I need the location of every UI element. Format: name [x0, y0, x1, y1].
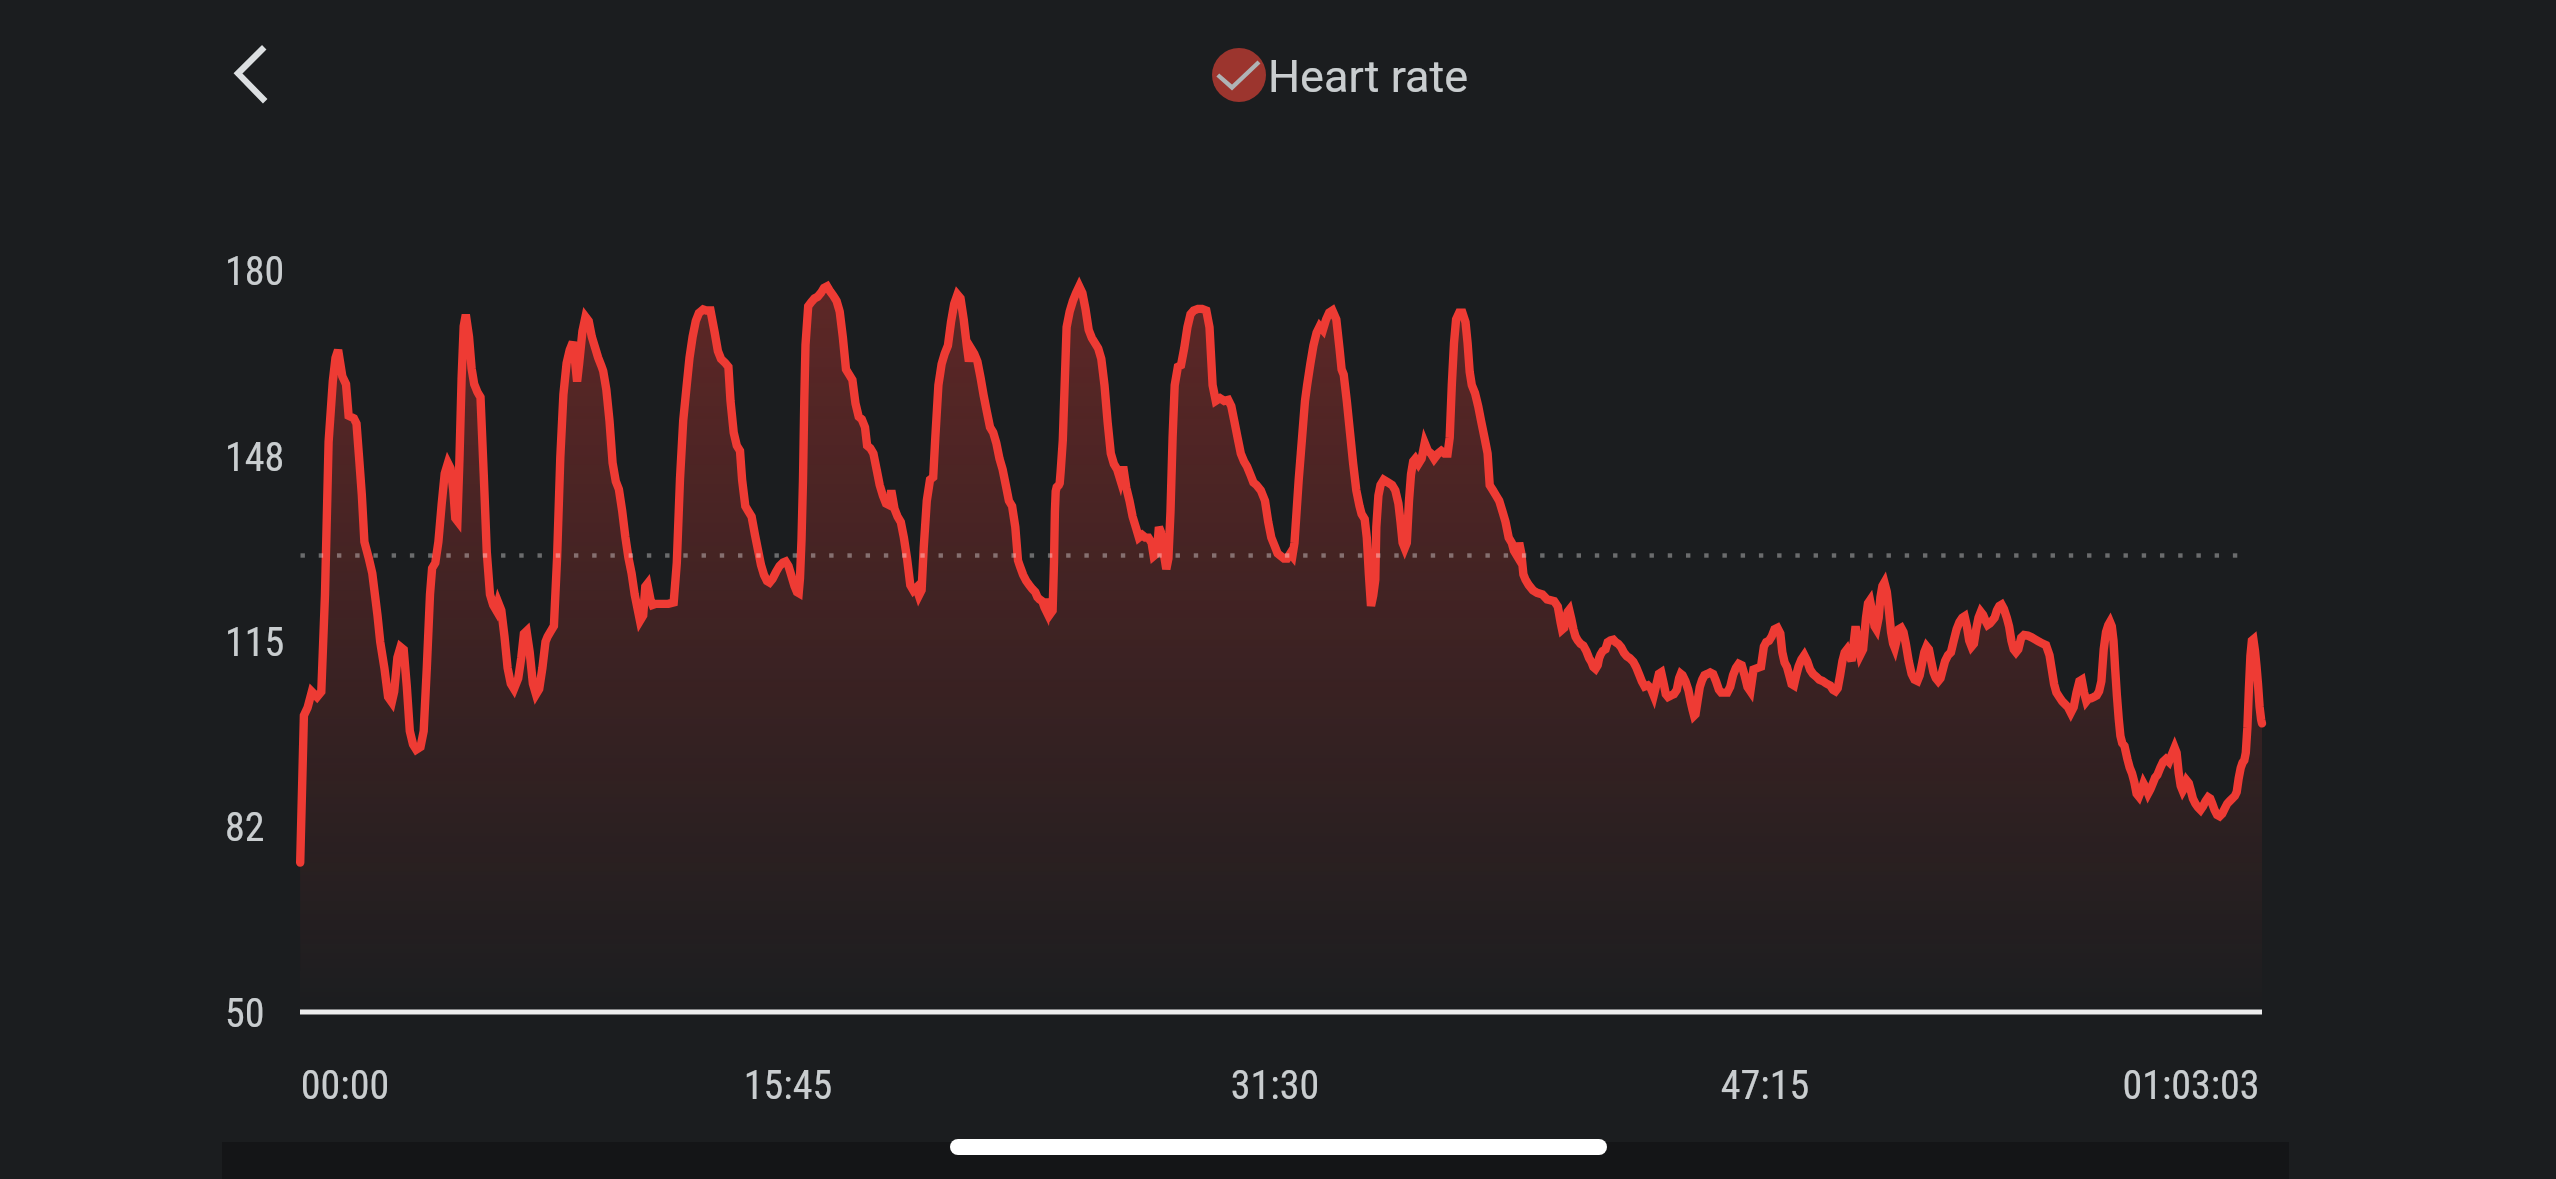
staticText: 148 — [225, 434, 285, 481]
staticText: 00:00 — [225, 1062, 465, 1109]
staticText: 50 — [225, 990, 265, 1037]
button[interactable]: Heart rate — [1212, 41, 1467, 109]
button[interactable]: Back — [190, 14, 310, 134]
staticText: 31:30 — [1155, 1062, 1395, 1109]
staticText: Heart rate — [1268, 50, 1469, 103]
staticText: 15:45 — [668, 1062, 908, 1109]
button[interactable]: Heart rate graph — [228, 240, 2262, 1100]
staticText: 82 — [225, 804, 265, 851]
staticText: 115 — [225, 619, 285, 666]
staticText: 01:03:03 — [2071, 1062, 2311, 1109]
staticText: 47:15 — [1645, 1062, 1885, 1109]
staticText: 180 — [225, 248, 285, 295]
